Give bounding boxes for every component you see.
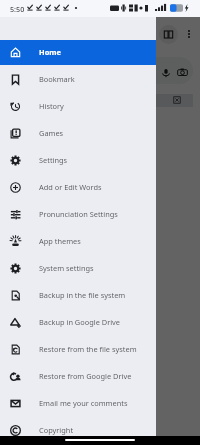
button[interactable]: Add or Edit Words [0,175,156,202]
button[interactable]: More options [181,26,197,42]
staticText: Restore from the file system [39,344,137,354]
button[interactable]: Voice search [160,67,171,78]
staticText: Restore from Google Drive [39,371,132,381]
button[interactable]: Backup in Google Drive [0,310,156,337]
staticText: Games [39,128,64,138]
staticText: Email me your comments [39,398,128,408]
button[interactable]: Close [172,95,182,105]
button[interactable]: Bookmark [0,67,156,94]
staticText: System settings [39,263,94,273]
staticText: App themes [39,236,81,246]
button[interactable]: Dictionary [159,25,178,44]
button[interactable]: Search with camera [176,66,188,78]
staticText: Backup in Google Drive [39,317,121,327]
staticText: Pronunciation Settings [39,209,118,219]
button[interactable]: Backup in the file system [0,283,156,310]
button[interactable]: System settings [0,256,156,283]
button[interactable]: Restore from Google Drive [0,364,156,391]
button[interactable]: Games [0,121,156,148]
button[interactable] [8,57,193,84]
button[interactable]: Pronunciation Settings [0,202,156,229]
staticText: Backup in the file system [39,290,126,300]
button[interactable]: Home [0,40,156,67]
staticText: Copyright [39,425,74,435]
button[interactable]: Copyright [0,418,156,445]
staticText: 5:50 [10,4,25,14]
button[interactable]: App themes [0,229,156,256]
staticText: Settings [39,155,68,165]
staticText: Home [39,47,61,57]
button[interactable]: History [0,94,156,121]
staticText: Bookmark [39,74,75,84]
button[interactable]: Email me your comments [0,391,156,418]
button[interactable]: Restore from the file system [0,337,156,364]
button[interactable]: Settings [0,148,156,175]
staticText: History [39,101,64,111]
staticText: Add or Edit Words [39,182,102,192]
